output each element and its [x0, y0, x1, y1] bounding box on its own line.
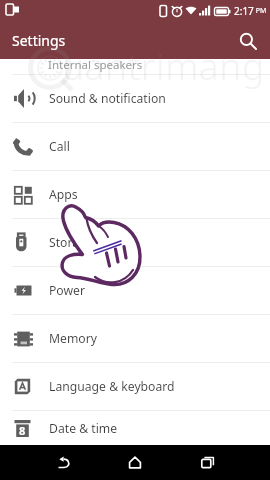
button[interactable]: Storage — [0, 219, 270, 266]
button[interactable]: Language & keyboard — [0, 363, 270, 410]
staticText: PM — [254, 6, 267, 16]
staticText: Power — [49, 282, 85, 299]
button[interactable]: 8 — [0, 411, 270, 445]
button[interactable]: Back — [42, 445, 82, 480]
button[interactable]: Search — [235, 28, 261, 54]
button[interactable]: Home — [115, 445, 155, 480]
staticText: Storage — [49, 234, 94, 251]
staticText: 8 — [19, 423, 26, 438]
button[interactable]: Internal speakers — [0, 59, 270, 74]
button[interactable]: Sound & notification — [0, 75, 270, 122]
staticText: Date & time — [49, 420, 118, 437]
staticText: Apps — [49, 186, 78, 203]
staticText: Call — [49, 138, 70, 155]
staticText: Internal speakers — [48, 59, 143, 72]
staticText: Language & keyboard — [49, 378, 175, 395]
staticText: uantrimang — [62, 40, 265, 90]
staticText: Memory — [49, 330, 97, 347]
button[interactable]: Apps — [0, 171, 270, 218]
button[interactable]: Recent apps — [188, 445, 228, 480]
staticText: Settings — [12, 31, 66, 50]
button[interactable]: Memory — [0, 315, 270, 362]
button[interactable]: Call — [0, 123, 270, 170]
staticText: 2:17 — [234, 4, 254, 18]
button[interactable]: Power — [0, 267, 270, 314]
staticText: Sound & notification — [49, 90, 166, 107]
